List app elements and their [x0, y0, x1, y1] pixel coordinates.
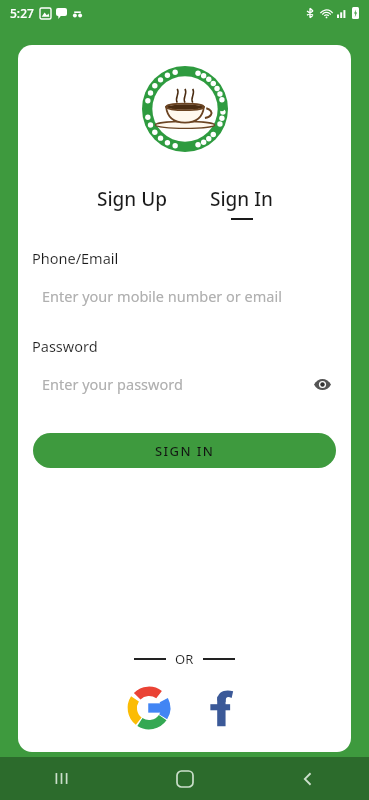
staticText: Password [32, 336, 98, 356]
staticText: Phone/Email [32, 248, 119, 268]
button[interactable]: Home [123, 757, 246, 800]
button[interactable]: Enter your password [32, 370, 337, 398]
button[interactable]: Back [246, 757, 369, 800]
button[interactable]: Show password [309, 371, 335, 397]
staticText: Sign In [210, 186, 273, 212]
button[interactable]: Enter your mobile number or email [32, 282, 337, 310]
button[interactable]: Sign In [202, 184, 281, 222]
staticText: SIGN IN [155, 442, 215, 460]
button[interactable]: Sign in with Google [127, 686, 171, 730]
staticText: Enter your mobile number or email [42, 286, 282, 306]
button[interactable]: Sign Up [89, 184, 176, 214]
staticText: Enter your password [42, 374, 183, 394]
staticText: Sign Up [97, 186, 168, 212]
button[interactable]: SIGN IN [33, 433, 336, 468]
staticText: 5:27 [10, 5, 34, 21]
button[interactable]: Recent apps [0, 757, 123, 800]
staticText: OR [175, 650, 194, 668]
button[interactable]: Sign in with Facebook [199, 686, 243, 730]
